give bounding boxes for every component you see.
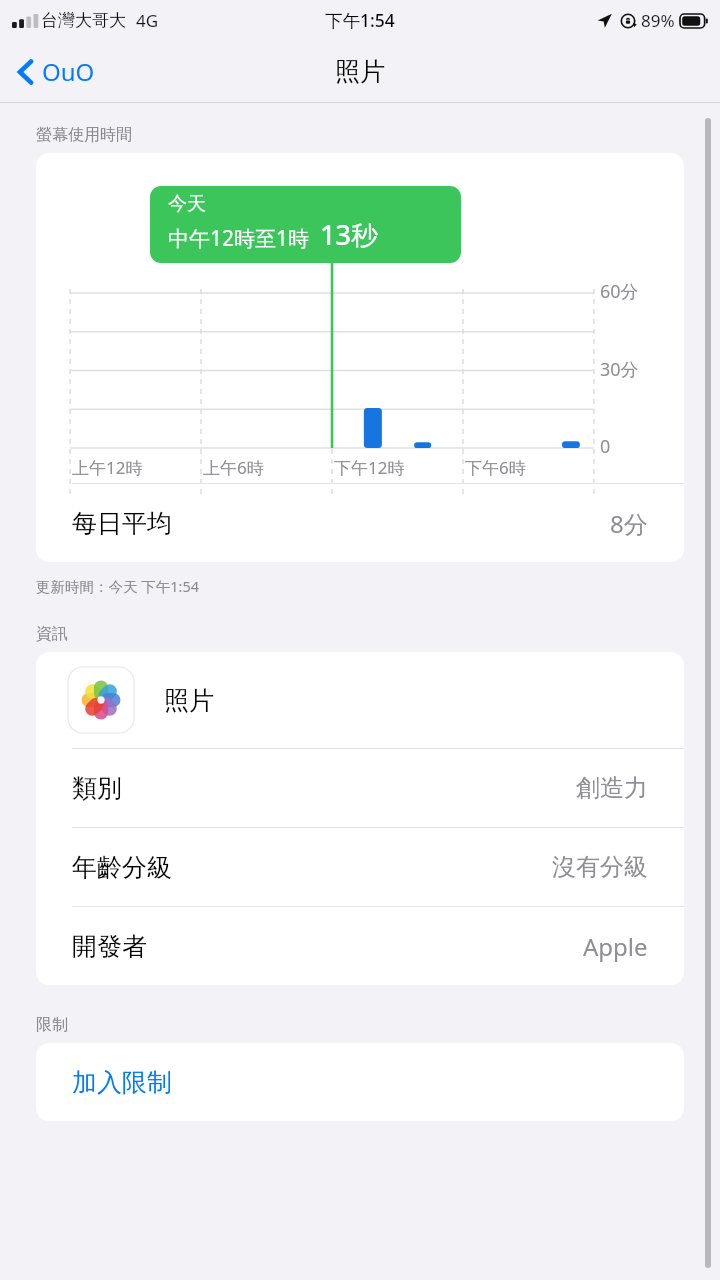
staticText: 開發者 (72, 931, 147, 962)
staticText: 上午12時 (72, 456, 143, 479)
staticText: 上午6時 (203, 456, 264, 479)
staticText: 8分 (610, 507, 648, 540)
staticText: 螢幕使用時間 (36, 125, 132, 145)
staticText: Apple (583, 930, 648, 963)
button[interactable]: 類別 (36, 749, 684, 827)
staticText: 30分 (600, 357, 639, 382)
staticText: 下午1:54 (325, 8, 395, 32)
staticText: 每日平均 (72, 508, 172, 539)
staticText: 0 (600, 434, 611, 459)
staticText: 照片 (164, 685, 214, 716)
staticText: 60分 (600, 279, 639, 304)
staticText: 更新時間：今天 下午1:54 (36, 576, 200, 596)
staticText: 中午12時至1時 (168, 224, 310, 253)
staticText: 下午12時 (334, 456, 405, 479)
staticText: 4G (136, 9, 159, 32)
staticText: 創造力 (576, 773, 648, 803)
button[interactable]: 年齡分級 (36, 828, 684, 906)
staticText: 下午6時 (465, 456, 526, 479)
staticText: 資訊 (36, 624, 68, 644)
staticText: 13秒 (320, 216, 378, 253)
button[interactable]: 照片 (36, 652, 684, 748)
staticText: 沒有分級 (552, 852, 648, 882)
staticText: 照片 (335, 56, 385, 87)
staticText: 加入限制 (72, 1067, 172, 1098)
staticText: 台灣大哥大 (41, 10, 126, 31)
staticText: 今天 (168, 192, 206, 216)
button[interactable]: OuO (0, 47, 109, 96)
staticText: 限制 (36, 1015, 68, 1035)
staticText: 類別 (72, 773, 122, 804)
staticText: OuO (42, 55, 95, 88)
button[interactable]: 開發者 (36, 907, 684, 985)
staticText: 年齡分級 (72, 852, 172, 883)
staticText: 89% (641, 9, 675, 32)
button[interactable]: 加入限制 (36, 1043, 684, 1121)
